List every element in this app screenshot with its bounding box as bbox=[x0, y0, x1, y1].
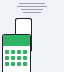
button[interactable] bbox=[17, 50, 21, 54]
button[interactable] bbox=[5, 62, 9, 66]
button[interactable] bbox=[23, 56, 27, 60]
button[interactable] bbox=[23, 62, 27, 66]
button[interactable] bbox=[11, 62, 15, 66]
button[interactable] bbox=[17, 62, 21, 66]
button[interactable] bbox=[11, 50, 15, 54]
button[interactable] bbox=[5, 50, 9, 54]
button[interactable] bbox=[5, 56, 9, 60]
button[interactable] bbox=[11, 56, 15, 60]
button[interactable] bbox=[17, 56, 21, 60]
button[interactable] bbox=[23, 50, 27, 54]
